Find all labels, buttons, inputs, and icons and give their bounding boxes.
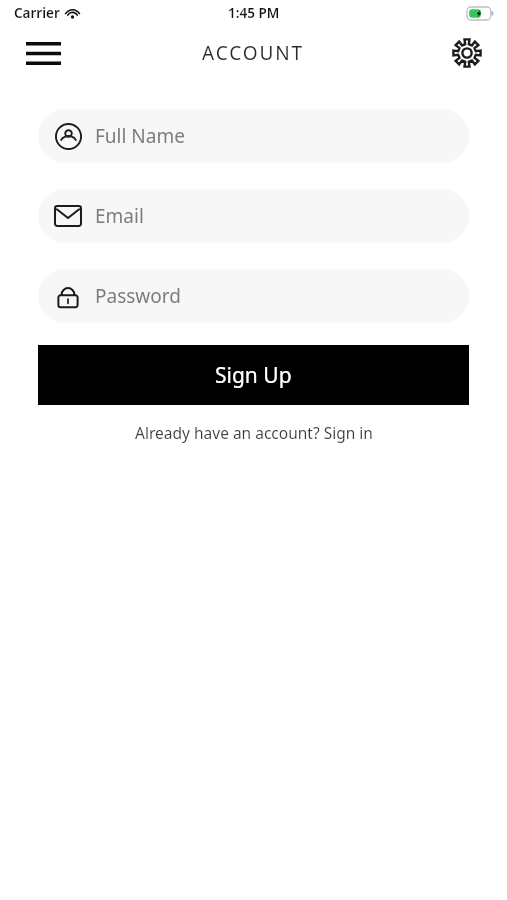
staticText: Password xyxy=(95,283,181,309)
button[interactable]: Already have an account? Sign in xyxy=(125,418,383,447)
staticText: Full Name xyxy=(95,123,185,149)
staticText: Carrier xyxy=(14,4,60,22)
staticText: ACCOUNT xyxy=(202,40,305,66)
button[interactable]: Menu xyxy=(20,30,66,76)
staticText: 1:45 PM xyxy=(228,4,280,22)
staticText: Email xyxy=(95,203,144,229)
button[interactable]: Sign Up xyxy=(38,345,469,405)
button[interactable]: Settings xyxy=(445,31,489,75)
button[interactable]: Email xyxy=(38,189,469,243)
staticText: Sign Up xyxy=(215,361,292,390)
button[interactable]: Full Name xyxy=(38,109,469,163)
staticText: Already have an account? Sign in xyxy=(135,422,373,443)
button[interactable]: Password xyxy=(38,269,469,323)
